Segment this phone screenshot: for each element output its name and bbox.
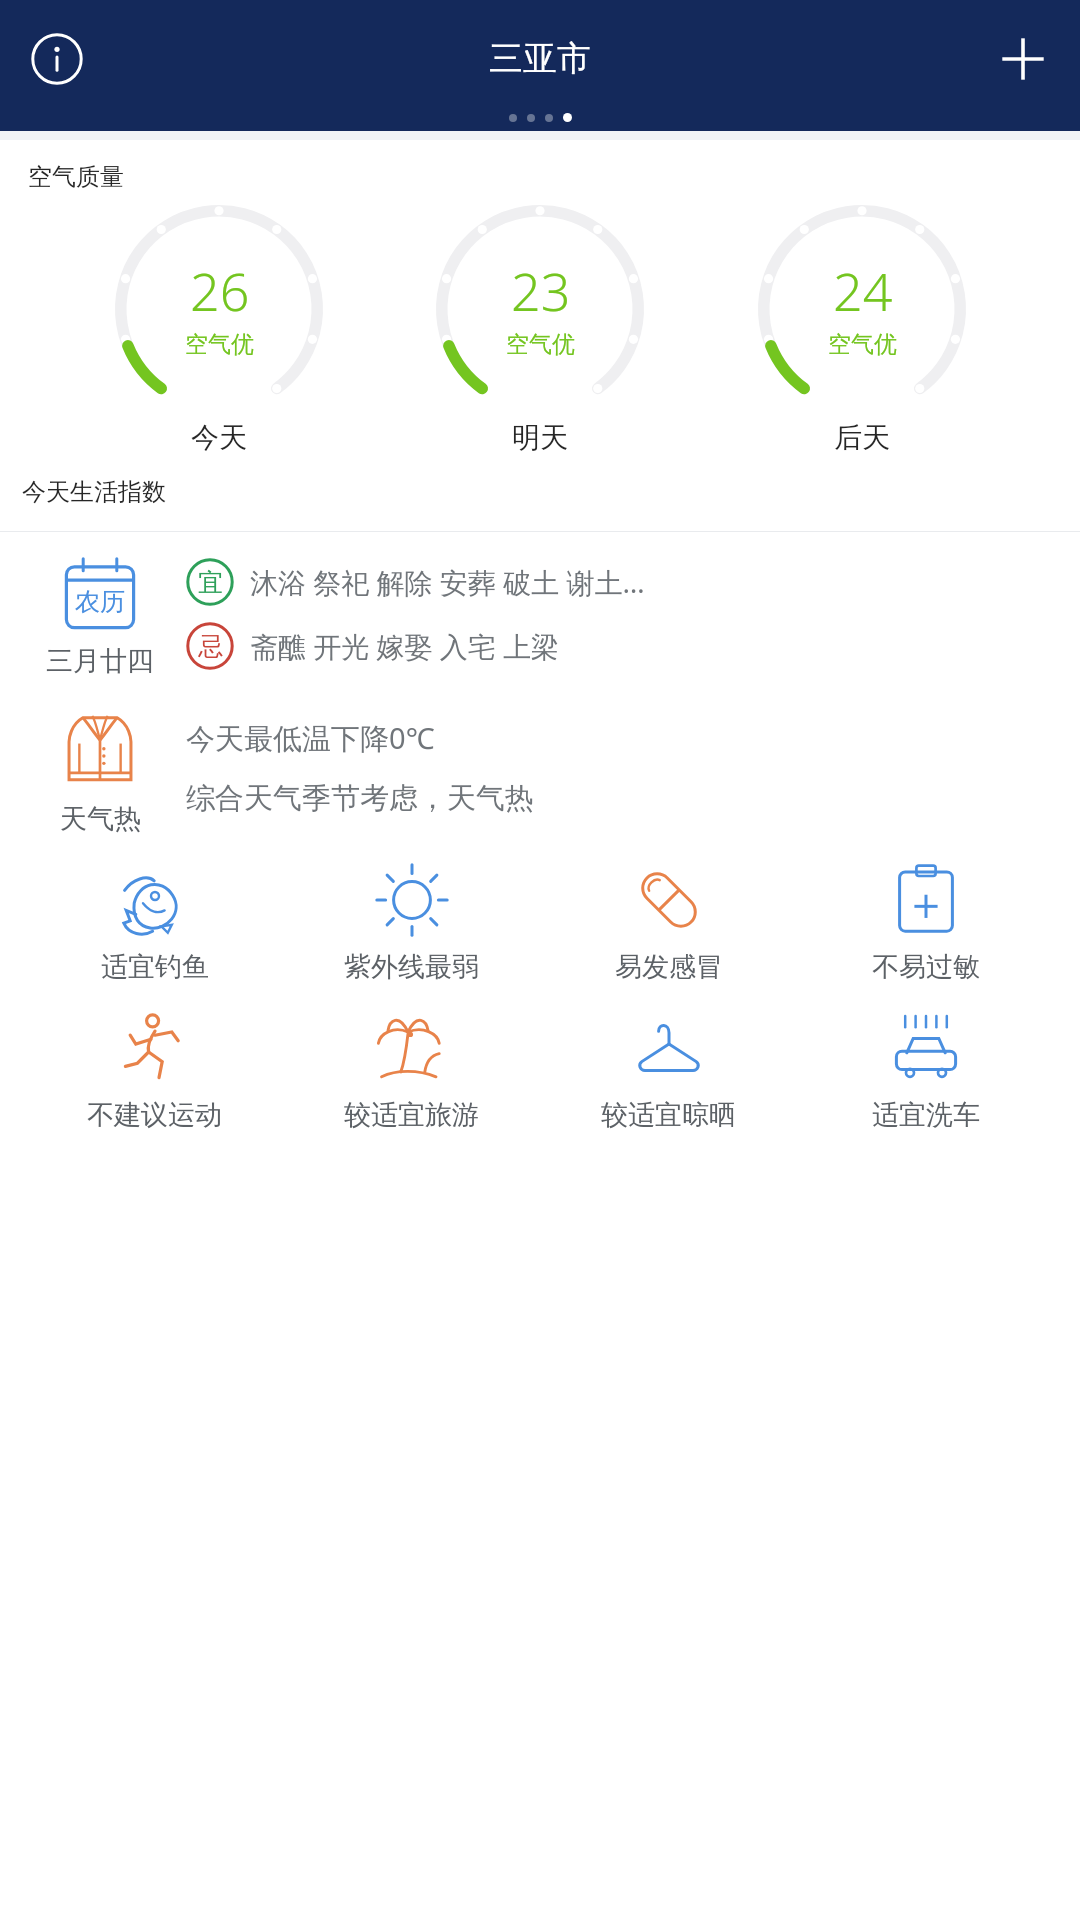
- staticText: 农历: [75, 586, 125, 617]
- button[interactable]: Drying index: [566, 1006, 771, 1134]
- button[interactable]: Cold risk index: [566, 858, 771, 986]
- staticText: 较适宜旅游: [344, 1098, 479, 1132]
- button[interactable]: UV index: [309, 858, 514, 986]
- staticText: 综合天气季节考虑，天气热: [186, 780, 534, 817]
- staticText: 26: [190, 255, 250, 326]
- staticText: 后天: [834, 420, 890, 455]
- staticText: 天气热: [60, 802, 141, 836]
- other: Travel index: [372, 1008, 452, 1088]
- button[interactable]: Fishing index: [52, 858, 257, 986]
- staticText: 23: [511, 255, 571, 326]
- button[interactable]: 天气热: [0, 704, 1080, 836]
- other: Cold risk index: [629, 860, 709, 940]
- staticText: 不易过敏: [872, 950, 980, 984]
- staticText: 空气优: [506, 330, 575, 359]
- staticText: 斋醮 开光 嫁娶 入宅 上梁: [250, 627, 560, 665]
- staticText: 空气优: [828, 330, 897, 359]
- staticText: 今天生活指数: [22, 477, 166, 507]
- button[interactable]: Info: [26, 28, 88, 90]
- other: Drying index: [629, 1008, 709, 1088]
- staticText: 易发感冒: [615, 950, 723, 984]
- button[interactable]: Add city: [992, 28, 1054, 90]
- staticText: 忌: [198, 631, 223, 662]
- staticText: 较适宜晾晒: [601, 1098, 736, 1132]
- other: Fishing index: [115, 860, 195, 940]
- staticText: 宜: [198, 567, 223, 598]
- staticText: 今天最低温下降0℃: [186, 718, 435, 758]
- button[interactable]: 农历: [0, 554, 1080, 678]
- staticText: 不建议运动: [87, 1098, 222, 1132]
- other: Exercise index: [115, 1008, 195, 1088]
- staticText: 沐浴 祭祀 解除 安葬 破土 谢土…: [250, 563, 645, 601]
- staticText: 今天: [191, 420, 247, 455]
- staticText: 24: [833, 255, 893, 326]
- staticText: 空气质量: [28, 162, 124, 192]
- other: UV index: [372, 860, 452, 940]
- staticText: 三亚市: [489, 37, 591, 80]
- button[interactable]: Car wash index: [823, 1006, 1028, 1134]
- staticText: 空气优: [185, 330, 254, 359]
- staticText: 明天: [512, 420, 568, 455]
- staticText: 紫外线最弱: [344, 950, 479, 984]
- staticText: 三月廿四: [46, 644, 154, 678]
- staticText: 适宜洗车: [872, 1098, 980, 1132]
- button[interactable]: Travel index: [309, 1006, 514, 1134]
- other: Car wash index: [886, 1008, 966, 1088]
- button[interactable]: Exercise index: [52, 1006, 257, 1134]
- button[interactable]: Allergy index: [823, 858, 1028, 986]
- other: Allergy index: [886, 860, 966, 940]
- staticText: 适宜钓鱼: [101, 950, 209, 984]
